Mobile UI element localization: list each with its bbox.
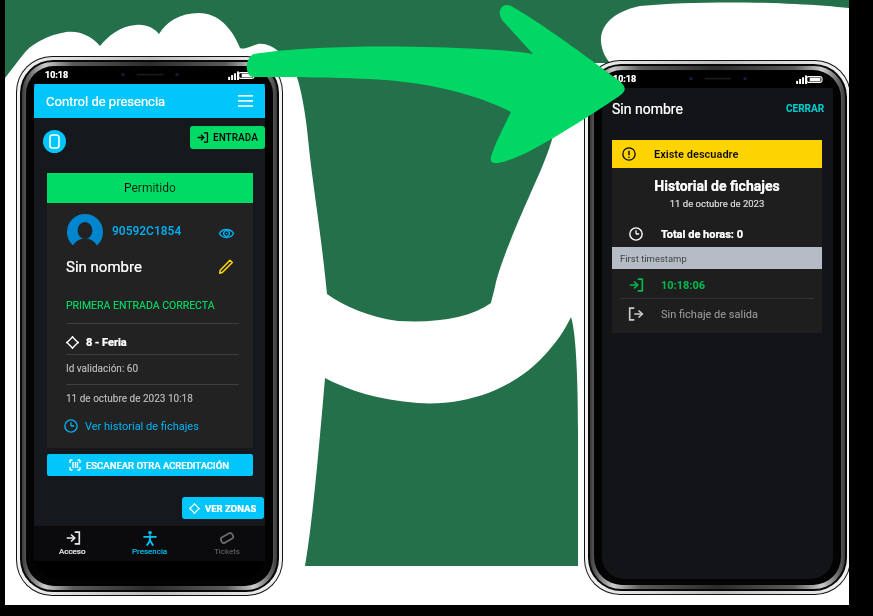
staticText: 10:18:06 [661, 279, 706, 292]
staticText: Control de presencia [46, 94, 166, 109]
staticText: Permitido [124, 181, 176, 195]
button[interactable]: Existe descuadre [612, 140, 822, 168]
button[interactable]: Acceso [34, 526, 111, 561]
button[interactable]: CERRAR [778, 98, 833, 120]
staticText: 11 de octubre de 2023 [612, 198, 822, 209]
staticText: 8 - Feria [86, 336, 127, 349]
button[interactable]: Ver historial de fichajes [64, 414, 199, 438]
staticText: Historial de fichajes [612, 178, 822, 194]
staticText: 10:18 [613, 74, 637, 85]
staticText: Id validación: 60 [66, 363, 139, 375]
button[interactable]: Presencia [111, 526, 188, 561]
button[interactable]: Sin fichaje de salida [629, 301, 759, 327]
staticText: Existe descuadre [654, 148, 739, 161]
button[interactable]: VER ZONAS [182, 497, 264, 519]
button[interactable]: Tickets [188, 526, 265, 561]
staticText: Presencia [132, 547, 168, 556]
button[interactable]: Edit name [216, 257, 236, 277]
staticText: Sin fichaje de salida [661, 308, 759, 321]
staticText: Ver historial de fichajes [85, 420, 199, 433]
staticText: CERRAR [786, 103, 825, 115]
staticText: ENTRADA [213, 132, 258, 144]
button[interactable]: Device [43, 130, 66, 153]
staticText: Tickets [214, 547, 240, 556]
staticText: 11 de octubre de 2023 10:18 [66, 393, 193, 405]
button[interactable]: 10:18:06 [629, 272, 706, 298]
button[interactable]: Show code [215, 222, 237, 244]
button[interactable]: ENTRADA [190, 126, 265, 149]
staticText: ESCANEAR OTRA ACREDITACIÓN [86, 460, 230, 471]
staticText: Sin nombre [612, 101, 683, 117]
staticText: VER ZONAS [205, 503, 257, 514]
staticText: PRIMERA ENTRADA CORRECTA [66, 299, 215, 311]
button[interactable]: Control de presencia [34, 84, 265, 118]
staticText: Sin nombre [66, 258, 142, 276]
button[interactable]: Permitido [47, 173, 253, 203]
staticText: Acceso [59, 547, 86, 556]
staticText: 10:18 [45, 70, 69, 81]
button[interactable]: Menu [232, 88, 258, 114]
button[interactable]: ESCANEAR OTRA ACREDITACIÓN [47, 454, 253, 476]
staticText: 90592C1854 [112, 224, 182, 238]
staticText: Total de horas: 0 [661, 228, 744, 241]
staticText: First timestamp [620, 253, 687, 264]
